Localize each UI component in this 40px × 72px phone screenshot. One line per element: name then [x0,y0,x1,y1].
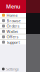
button[interactable]: Orders [0,24,26,28]
button[interactable]: Wallet [0,29,26,34]
staticText: Wallet [6,29,17,34]
button[interactable]: Settings [0,66,26,72]
button[interactable]: Browse [0,18,26,23]
button[interactable]: Offers [0,35,26,39]
staticText: Browse [6,18,20,23]
staticText: Support [6,39,19,45]
button[interactable]: Home [0,13,26,17]
staticText: Orders [6,23,19,29]
staticText: Settings [6,66,19,72]
button[interactable]: Support [0,40,26,44]
staticText: Menu [6,3,20,10]
staticText: Home [6,12,17,18]
staticText: Offers [6,34,18,39]
